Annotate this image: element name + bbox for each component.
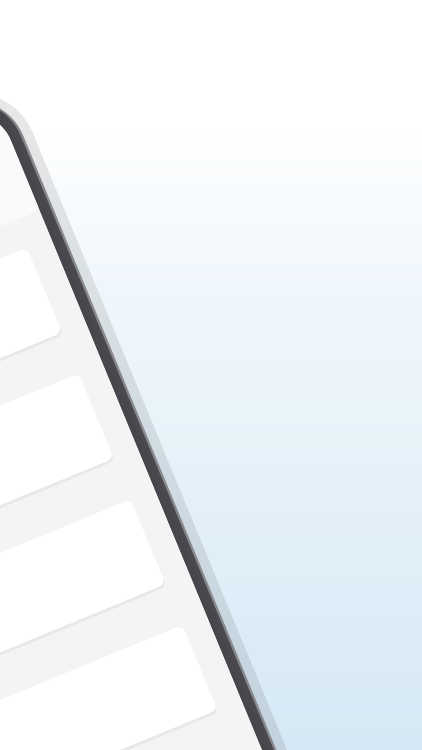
button[interactable]: Phone app preview (0, 0, 422, 750)
